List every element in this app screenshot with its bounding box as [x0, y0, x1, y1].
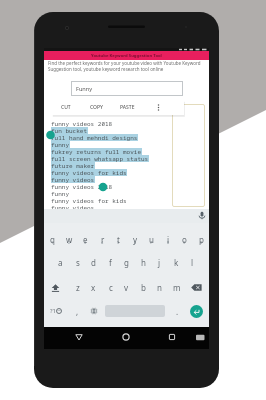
button[interactable]: Switch keyboard — [195, 332, 206, 343]
button[interactable]: 8 — [160, 227, 177, 251]
staticText: o — [182, 234, 187, 245]
button[interactable]: z — [69, 275, 86, 299]
staticText: s — [76, 257, 80, 268]
staticText: f — [109, 257, 112, 268]
button[interactable]: l — [184, 250, 201, 274]
button[interactable]: h — [135, 250, 152, 274]
staticText: . — [176, 306, 179, 317]
button[interactable]: fun bucket — [51, 127, 88, 134]
button[interactable]: n — [151, 275, 168, 299]
staticText: funny videos for kids — [51, 197, 127, 204]
staticText: g — [124, 257, 129, 268]
staticText: full hand mehndi designs — [51, 134, 138, 141]
button[interactable]: Change language — [86, 299, 102, 323]
button[interactable]: COPY — [82, 100, 110, 115]
button[interactable]: 7 — [143, 227, 160, 251]
button[interactable]: funny — [51, 190, 70, 197]
staticText: v — [124, 282, 129, 293]
button[interactable]: Back — [73, 331, 85, 343]
staticText: CUT — [61, 104, 71, 111]
button[interactable]: Shift — [44, 275, 69, 299]
button[interactable]: 1 — [44, 227, 61, 251]
button[interactable]: 5 — [110, 227, 127, 251]
staticText: ?1 — [50, 307, 56, 315]
button[interactable]: More options — [150, 100, 166, 115]
button[interactable]: c — [102, 275, 119, 299]
staticText: funny videos for kids — [51, 169, 127, 176]
staticText: h — [141, 257, 146, 268]
button[interactable]: 6 — [127, 227, 144, 251]
button[interactable]: funny videos — [51, 204, 95, 211]
button[interactable]: Funny — [71, 81, 183, 96]
staticText: funny videos 2018 — [51, 120, 113, 127]
staticText: m — [173, 282, 181, 293]
button[interactable]: m — [168, 275, 185, 299]
button[interactable]: , — [69, 299, 85, 323]
button[interactable]: Symbols — [44, 299, 68, 323]
staticText: w — [66, 234, 73, 245]
staticText: Find the perfect keywords for your youtu… — [48, 60, 203, 73]
button[interactable]: Home — [120, 331, 132, 343]
staticText: PASTE — [120, 104, 135, 111]
button[interactable]: Voice input — [196, 209, 208, 221]
staticText: COPY — [90, 104, 103, 111]
button[interactable]: . — [169, 299, 185, 323]
staticText: future maker — [51, 162, 95, 169]
button[interactable]: funny — [51, 141, 70, 148]
button[interactable]: 9 — [176, 227, 193, 251]
button[interactable]: 2 — [61, 227, 78, 251]
button[interactable]: fukrey returns full movie — [51, 148, 142, 155]
button[interactable]: Enter — [190, 305, 203, 318]
button[interactable]: v — [118, 275, 135, 299]
button[interactable]: full screen whatsapp status — [51, 155, 149, 162]
staticText: l — [191, 257, 194, 268]
staticText: k — [174, 257, 179, 268]
staticText: 0 — [200, 240, 203, 245]
button[interactable]: funny videos for kids — [51, 169, 127, 176]
button[interactable]: funny videos for kids — [51, 197, 127, 204]
button[interactable]: 3 — [77, 227, 94, 251]
staticText: 8 — [167, 240, 170, 245]
button[interactable]: f — [102, 250, 119, 274]
staticText: d — [91, 257, 96, 268]
button[interactable]: Backspace — [184, 275, 209, 299]
staticText: , — [76, 306, 79, 317]
button[interactable]: x — [85, 275, 102, 299]
button[interactable]: g — [118, 250, 135, 274]
button[interactable]: funny videos 2018 — [51, 120, 113, 127]
button[interactable]: Recent apps — [166, 331, 178, 343]
staticText: z — [76, 282, 80, 293]
staticText: 6 — [134, 240, 137, 245]
button[interactable]: funny videos 2018 — [51, 183, 113, 190]
button[interactable]: future maker — [51, 162, 95, 169]
staticText: fun bucket — [51, 127, 88, 134]
button[interactable]: d — [85, 250, 102, 274]
staticText: e — [83, 234, 88, 245]
button[interactable]: funny videos — [51, 176, 95, 183]
button[interactable]: full hand mehndi designs — [51, 134, 138, 141]
staticText: 1 — [51, 240, 54, 245]
staticText: 5 — [117, 240, 120, 245]
staticText: full screen whatsapp status — [51, 155, 149, 162]
staticText: p — [199, 234, 204, 245]
button[interactable]: PASTE — [113, 100, 141, 115]
staticText: 3 — [84, 240, 87, 245]
staticText: 7 — [150, 240, 153, 245]
staticText: y — [133, 234, 138, 245]
staticText: i — [167, 234, 170, 245]
button[interactable]: a — [52, 250, 69, 274]
staticText: a — [58, 257, 63, 268]
button[interactable]: Youtube Keyword Suggestion Tool — [44, 51, 209, 60]
staticText: funny videos 2018 — [51, 183, 113, 190]
staticText: q — [50, 234, 55, 245]
button[interactable]: b — [135, 275, 152, 299]
button[interactable]: 4 — [94, 227, 111, 251]
button[interactable]: j — [151, 250, 168, 274]
button[interactable]: CUT — [52, 100, 80, 115]
button[interactable]: s — [69, 250, 86, 274]
staticText: 9 — [183, 240, 186, 245]
button[interactable]: 0 — [193, 227, 210, 251]
staticText: 2 — [68, 240, 71, 245]
button[interactable]: k — [168, 250, 185, 274]
